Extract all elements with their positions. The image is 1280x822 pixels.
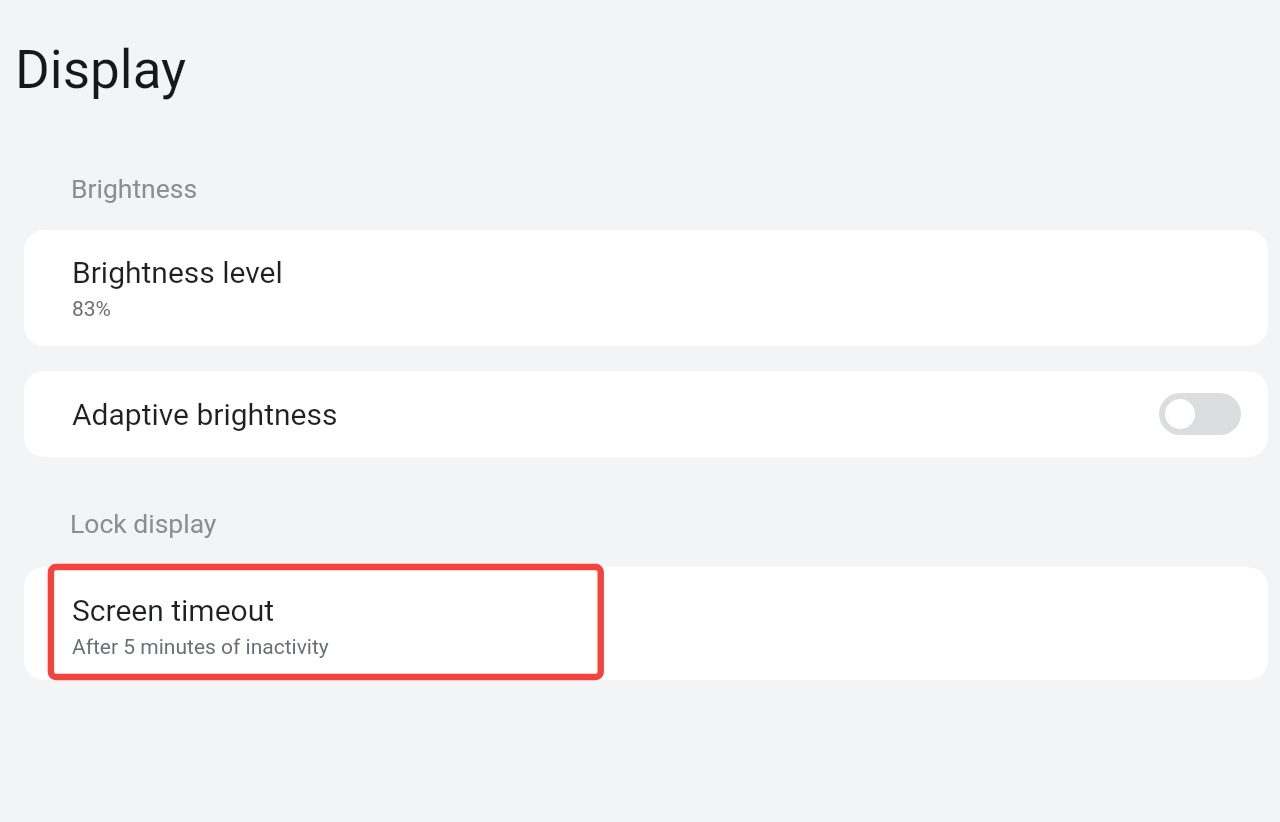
button[interactable]: Adaptive brightness <box>24 371 1268 457</box>
button[interactable]: Adaptive brightness toggle, off <box>1159 393 1241 435</box>
staticText: After 5 minutes of inactivity <box>72 635 329 660</box>
button[interactable]: Screen timeout <box>24 567 1268 680</box>
staticText: Brightness level <box>72 255 283 290</box>
staticText: Adaptive brightness <box>72 397 338 432</box>
staticText: 83% <box>72 297 111 322</box>
staticText: Brightness <box>71 173 198 204</box>
button[interactable]: Brightness level <box>24 230 1268 346</box>
staticText: Display <box>15 39 187 101</box>
staticText: Screen timeout <box>72 593 275 628</box>
staticText: Lock display <box>70 508 217 539</box>
